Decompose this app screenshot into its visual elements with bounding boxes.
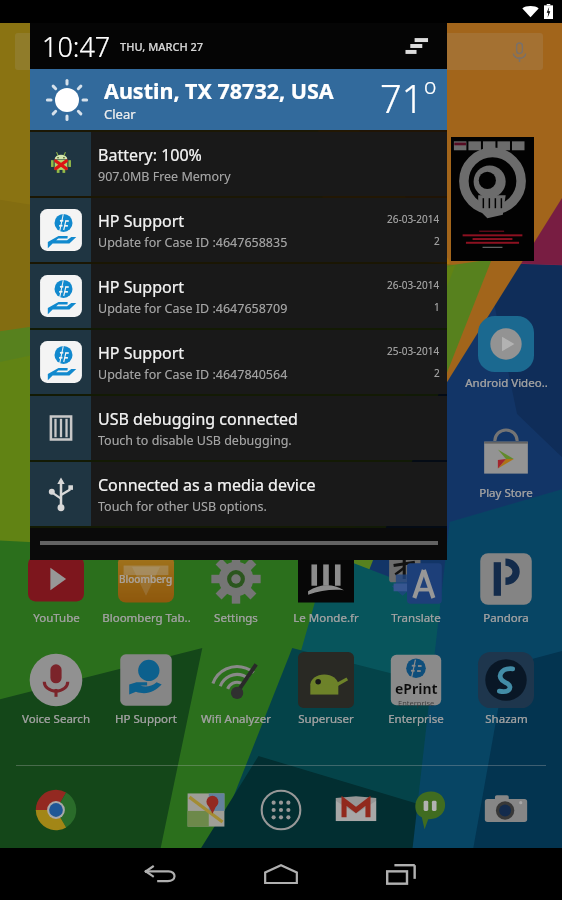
staticText: Bloomberg Tab.. (102, 610, 191, 626)
staticText: 907.0MB Free Memory (98, 168, 231, 185)
button[interactable]: Chrome (28, 782, 84, 838)
staticText: Touch to disable USB debugging. (98, 432, 292, 449)
staticText: Voice Search (22, 711, 90, 727)
staticText: Play Store (479, 485, 533, 501)
staticText: Bloomberg (119, 572, 173, 586)
staticText: 2 (434, 366, 440, 380)
button[interactable]: Wifi Analyzer (186, 652, 286, 727)
staticText: Le Monde.fr (293, 610, 359, 626)
button[interactable]: WIRED magazine (451, 137, 534, 261)
button[interactable]: USB debugging connected (30, 396, 447, 460)
staticText: o (424, 72, 437, 101)
button[interactable]: HP Support (30, 330, 447, 394)
staticText: 26-03-2014 (387, 278, 440, 292)
staticText: 2 (434, 234, 440, 248)
button[interactable]: Superuser (276, 652, 376, 727)
button[interactable]: Quick settings (395, 24, 439, 68)
button[interactable]: Voice Search (6, 652, 106, 727)
button[interactable]: Austin, TX 78732, USA (30, 69, 447, 130)
staticText: HP Support (98, 210, 185, 232)
button[interactable]: Play Store (456, 426, 556, 501)
staticText: Battery: 100% (98, 144, 202, 166)
staticText: THU, MARCH 27 (120, 39, 204, 54)
button[interactable]: Settings (186, 551, 286, 626)
button[interactable]: HP Support (30, 264, 447, 328)
button[interactable]: Recents (341, 848, 461, 900)
button[interactable] (30, 528, 447, 560)
button[interactable]: Translate (366, 551, 466, 626)
staticText: Pandora (483, 610, 529, 626)
staticText: YouTube (33, 610, 80, 626)
staticText: Settings (214, 610, 258, 626)
button[interactable]: Back (101, 848, 221, 900)
staticText: Shazam (485, 711, 528, 727)
staticText: Austin, TX 78732, USA (104, 76, 334, 105)
button[interactable]: All apps (253, 782, 309, 838)
button[interactable]: Connected as a media device (30, 462, 447, 526)
staticText: 25-03-2014 (387, 344, 440, 358)
staticText: Enterprise (398, 698, 435, 708)
button[interactable]: ePrint (366, 652, 466, 727)
staticText: 26-03-2014 (387, 212, 440, 226)
staticText: USB debugging connected (98, 408, 298, 430)
button[interactable]: YouTube (6, 551, 106, 626)
button[interactable]: Gmail (328, 782, 384, 838)
button[interactable]: Le Monde.fr (276, 551, 376, 626)
staticText: Update for Case ID :4647658835 (98, 234, 288, 251)
other: Voice search (506, 39, 532, 65)
staticText: Update for Case ID :4647658709 (98, 300, 288, 317)
staticText: Update for Case ID :4647840564 (98, 366, 288, 383)
button[interactable]: Hangouts (403, 782, 459, 838)
button[interactable]: Maps (178, 782, 234, 838)
staticText: Superuser (298, 711, 354, 727)
staticText: Connected as a media device (98, 474, 316, 496)
staticText: 71 (380, 72, 424, 124)
staticText: ePrint (395, 679, 438, 698)
staticText: Enterprise (388, 711, 444, 727)
staticText: HP Support (98, 342, 185, 364)
button[interactable]: Shazam (456, 652, 556, 727)
staticText: Android Video.. (465, 375, 548, 391)
button[interactable]: Android Video.. (456, 316, 556, 391)
button[interactable]: Pandora (456, 551, 556, 626)
button[interactable]: 10:47 (30, 23, 447, 69)
button[interactable]: Bloomberg (96, 551, 196, 626)
button[interactable]: Camera (478, 782, 534, 838)
button[interactable]: Home (221, 848, 341, 900)
staticText: Touch for other USB options. (98, 498, 267, 515)
staticText: 1 (434, 300, 440, 314)
staticText: Translate (391, 610, 441, 626)
button[interactable]: Voice search (15, 33, 543, 70)
button[interactable]: HP Support (96, 652, 196, 727)
staticText: Clear (104, 105, 136, 123)
staticText: Wifi Analyzer (201, 711, 271, 727)
button[interactable]: Battery: 100% (30, 132, 447, 196)
staticText: HP Support (98, 276, 185, 298)
staticText: HP Support (115, 711, 177, 727)
button[interactable]: HP Support (30, 198, 447, 262)
staticText: 10:47 (42, 28, 111, 65)
